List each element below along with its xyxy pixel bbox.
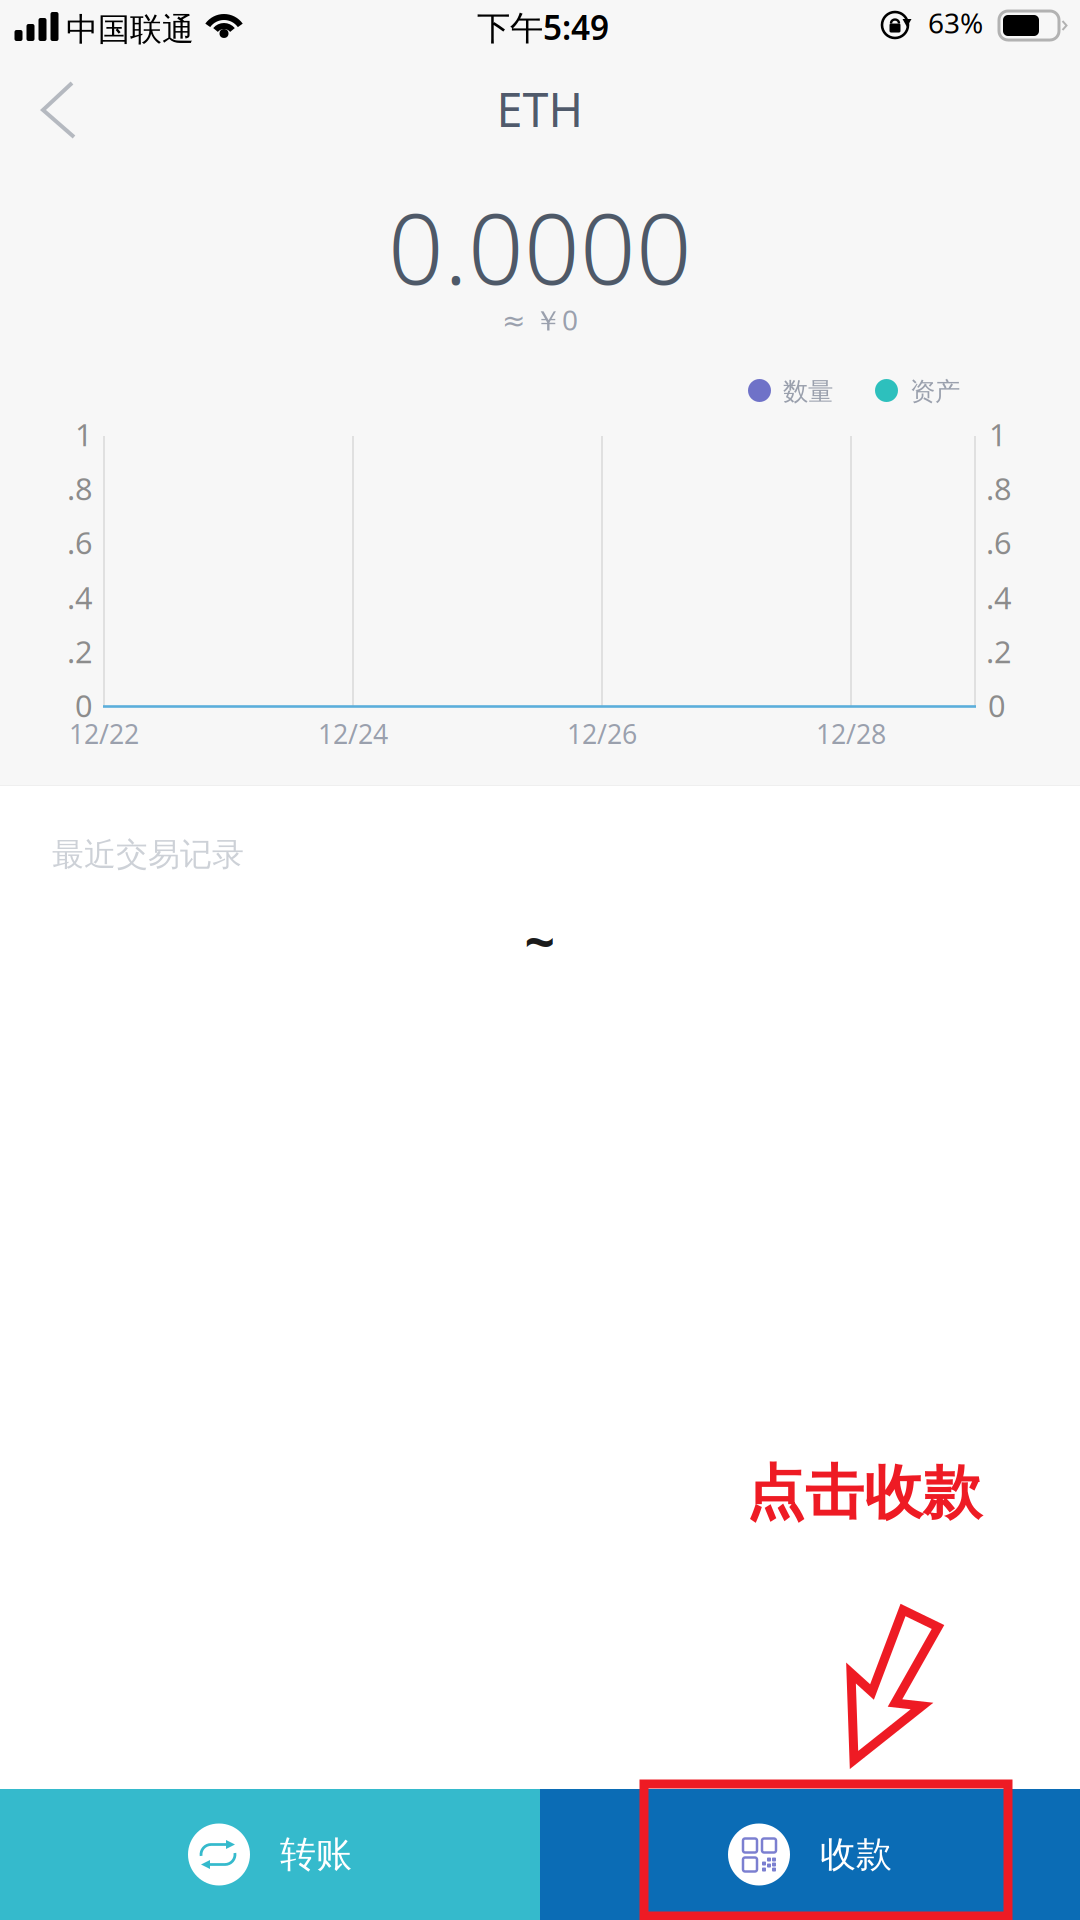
staticText: ~	[524, 906, 555, 977]
staticText: 点击收款	[746, 1457, 982, 1529]
staticText: 0	[75, 685, 93, 726]
staticText: 资产	[910, 376, 960, 407]
staticText: 下午5:49	[477, 5, 609, 49]
button[interactable]: Back	[17, 57, 99, 163]
staticText: .4	[986, 577, 1012, 618]
staticText: 数量	[783, 376, 833, 407]
staticText: 12/22	[69, 716, 139, 751]
staticText: 1	[75, 414, 93, 455]
staticText: .4	[67, 577, 93, 618]
button[interactable]: 收款	[540, 1789, 1080, 1920]
staticText: 12/26	[567, 716, 637, 751]
staticText: 1	[989, 414, 1007, 455]
staticText: .8	[67, 468, 93, 509]
staticText: ETH	[496, 78, 583, 140]
staticText: 转账	[280, 1832, 352, 1877]
staticText: 最近交易记录	[52, 835, 244, 874]
staticText: .2	[986, 631, 1012, 672]
staticText: .2	[67, 631, 93, 672]
staticText: ≈ ￥0	[502, 301, 578, 338]
staticText: 12/24	[318, 716, 388, 751]
staticText: 12/28	[816, 716, 886, 751]
button[interactable]: 转账	[0, 1789, 540, 1920]
staticText: .6	[67, 522, 93, 563]
staticText: .6	[986, 522, 1012, 563]
staticText: .8	[986, 468, 1012, 509]
staticText: 0.0000	[388, 182, 692, 311]
staticText: 收款	[820, 1832, 892, 1877]
staticText: 63%	[928, 4, 983, 41]
staticText: 中国联通	[66, 10, 194, 49]
staticText: 0	[988, 685, 1006, 726]
